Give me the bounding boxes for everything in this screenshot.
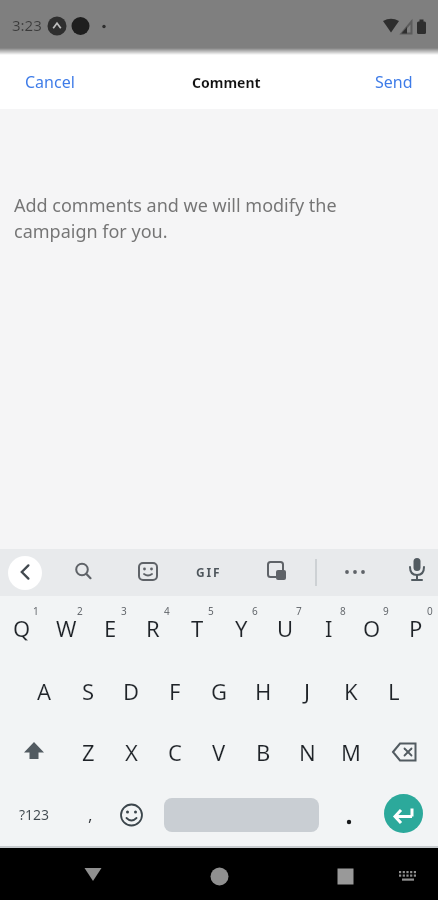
button[interactable] <box>164 798 319 832</box>
button[interactable]: H <box>241 660 285 722</box>
staticText: P <box>409 613 423 643</box>
button[interactable]: I <box>307 597 351 659</box>
staticText: 7 <box>296 604 302 618</box>
staticText: 1 <box>33 604 39 618</box>
button[interactable]: R <box>131 597 175 659</box>
button[interactable]: K <box>329 660 373 722</box>
button[interactable]: M <box>329 721 373 783</box>
staticText: Y <box>235 613 248 643</box>
staticText: J <box>304 676 311 706</box>
button[interactable]: D <box>109 660 153 722</box>
staticText: , <box>88 803 93 826</box>
button[interactable]: Z <box>66 721 110 783</box>
staticText: G <box>211 676 228 706</box>
button[interactable] <box>195 850 243 898</box>
button[interactable] <box>330 783 370 845</box>
staticText: 3 <box>121 604 127 618</box>
button[interactable]: V <box>197 721 241 783</box>
staticText: A <box>37 676 52 706</box>
staticText: B <box>256 737 271 767</box>
staticText: I <box>325 613 333 643</box>
staticText: Cancel <box>25 71 75 93</box>
staticText: D <box>123 676 140 706</box>
staticText: 4 <box>164 604 170 618</box>
button[interactable]: Send <box>364 60 424 104</box>
button[interactable] <box>378 721 430 783</box>
button[interactable] <box>8 721 60 783</box>
button[interactable]: ?123 <box>8 783 61 845</box>
button[interactable]: Y <box>219 597 263 659</box>
button[interactable]: C <box>153 721 197 783</box>
staticText: Z <box>82 737 95 767</box>
staticText: E <box>104 613 117 643</box>
staticText: 3:23 <box>12 15 42 35</box>
button[interactable]: GIF <box>196 564 222 580</box>
button[interactable]: O <box>350 597 394 659</box>
staticText: O <box>363 613 381 643</box>
button[interactable]: Q <box>0 597 44 659</box>
staticText: K <box>344 676 358 706</box>
staticText: M <box>341 737 361 767</box>
staticText: T <box>191 613 204 643</box>
button[interactable]: B <box>241 721 285 783</box>
button[interactable]: Cancel <box>14 60 86 104</box>
staticText: GIF <box>196 564 222 580</box>
button[interactable]: S <box>66 660 110 722</box>
staticText: H <box>255 676 272 706</box>
staticText: ?123 <box>19 805 50 824</box>
button[interactable] <box>384 850 432 898</box>
staticText: R <box>146 613 160 643</box>
staticText: C <box>168 737 182 767</box>
button[interactable]: A <box>22 660 66 722</box>
button[interactable]: E <box>88 597 132 659</box>
button[interactable]: J <box>285 660 329 722</box>
staticText: V <box>212 737 226 767</box>
staticText: W <box>56 613 77 643</box>
staticText: F <box>169 676 181 706</box>
button[interactable]: W <box>44 597 88 659</box>
button[interactable] <box>110 783 154 845</box>
staticText: U <box>277 613 294 643</box>
staticText: S <box>82 676 95 706</box>
button[interactable] <box>384 794 423 833</box>
staticText: L <box>388 676 400 706</box>
staticText: 0 <box>427 604 433 618</box>
staticText: 5 <box>208 604 214 618</box>
staticText: 8 <box>340 604 346 618</box>
staticText: X <box>125 737 138 767</box>
button[interactable]: G <box>197 660 241 722</box>
button[interactable]: N <box>285 721 329 783</box>
button[interactable] <box>8 556 42 590</box>
button[interactable] <box>69 850 117 898</box>
button[interactable]: X <box>109 721 153 783</box>
staticText: N <box>299 737 316 767</box>
button[interactable]: T <box>175 597 219 659</box>
staticText: Send <box>375 71 413 93</box>
button[interactable]: F <box>153 660 197 722</box>
staticText: Comment <box>192 73 261 92</box>
staticText: Add comments and we will modify the camp… <box>14 193 337 243</box>
button[interactable]: U <box>263 597 307 659</box>
staticText: 2 <box>77 604 83 618</box>
button[interactable]: , <box>68 783 112 845</box>
staticText: 6 <box>252 604 258 618</box>
button[interactable] <box>321 850 369 898</box>
staticText: Q <box>13 613 31 643</box>
button[interactable]: L <box>372 660 416 722</box>
staticText: 9 <box>383 604 389 618</box>
button[interactable]: P <box>394 597 438 659</box>
